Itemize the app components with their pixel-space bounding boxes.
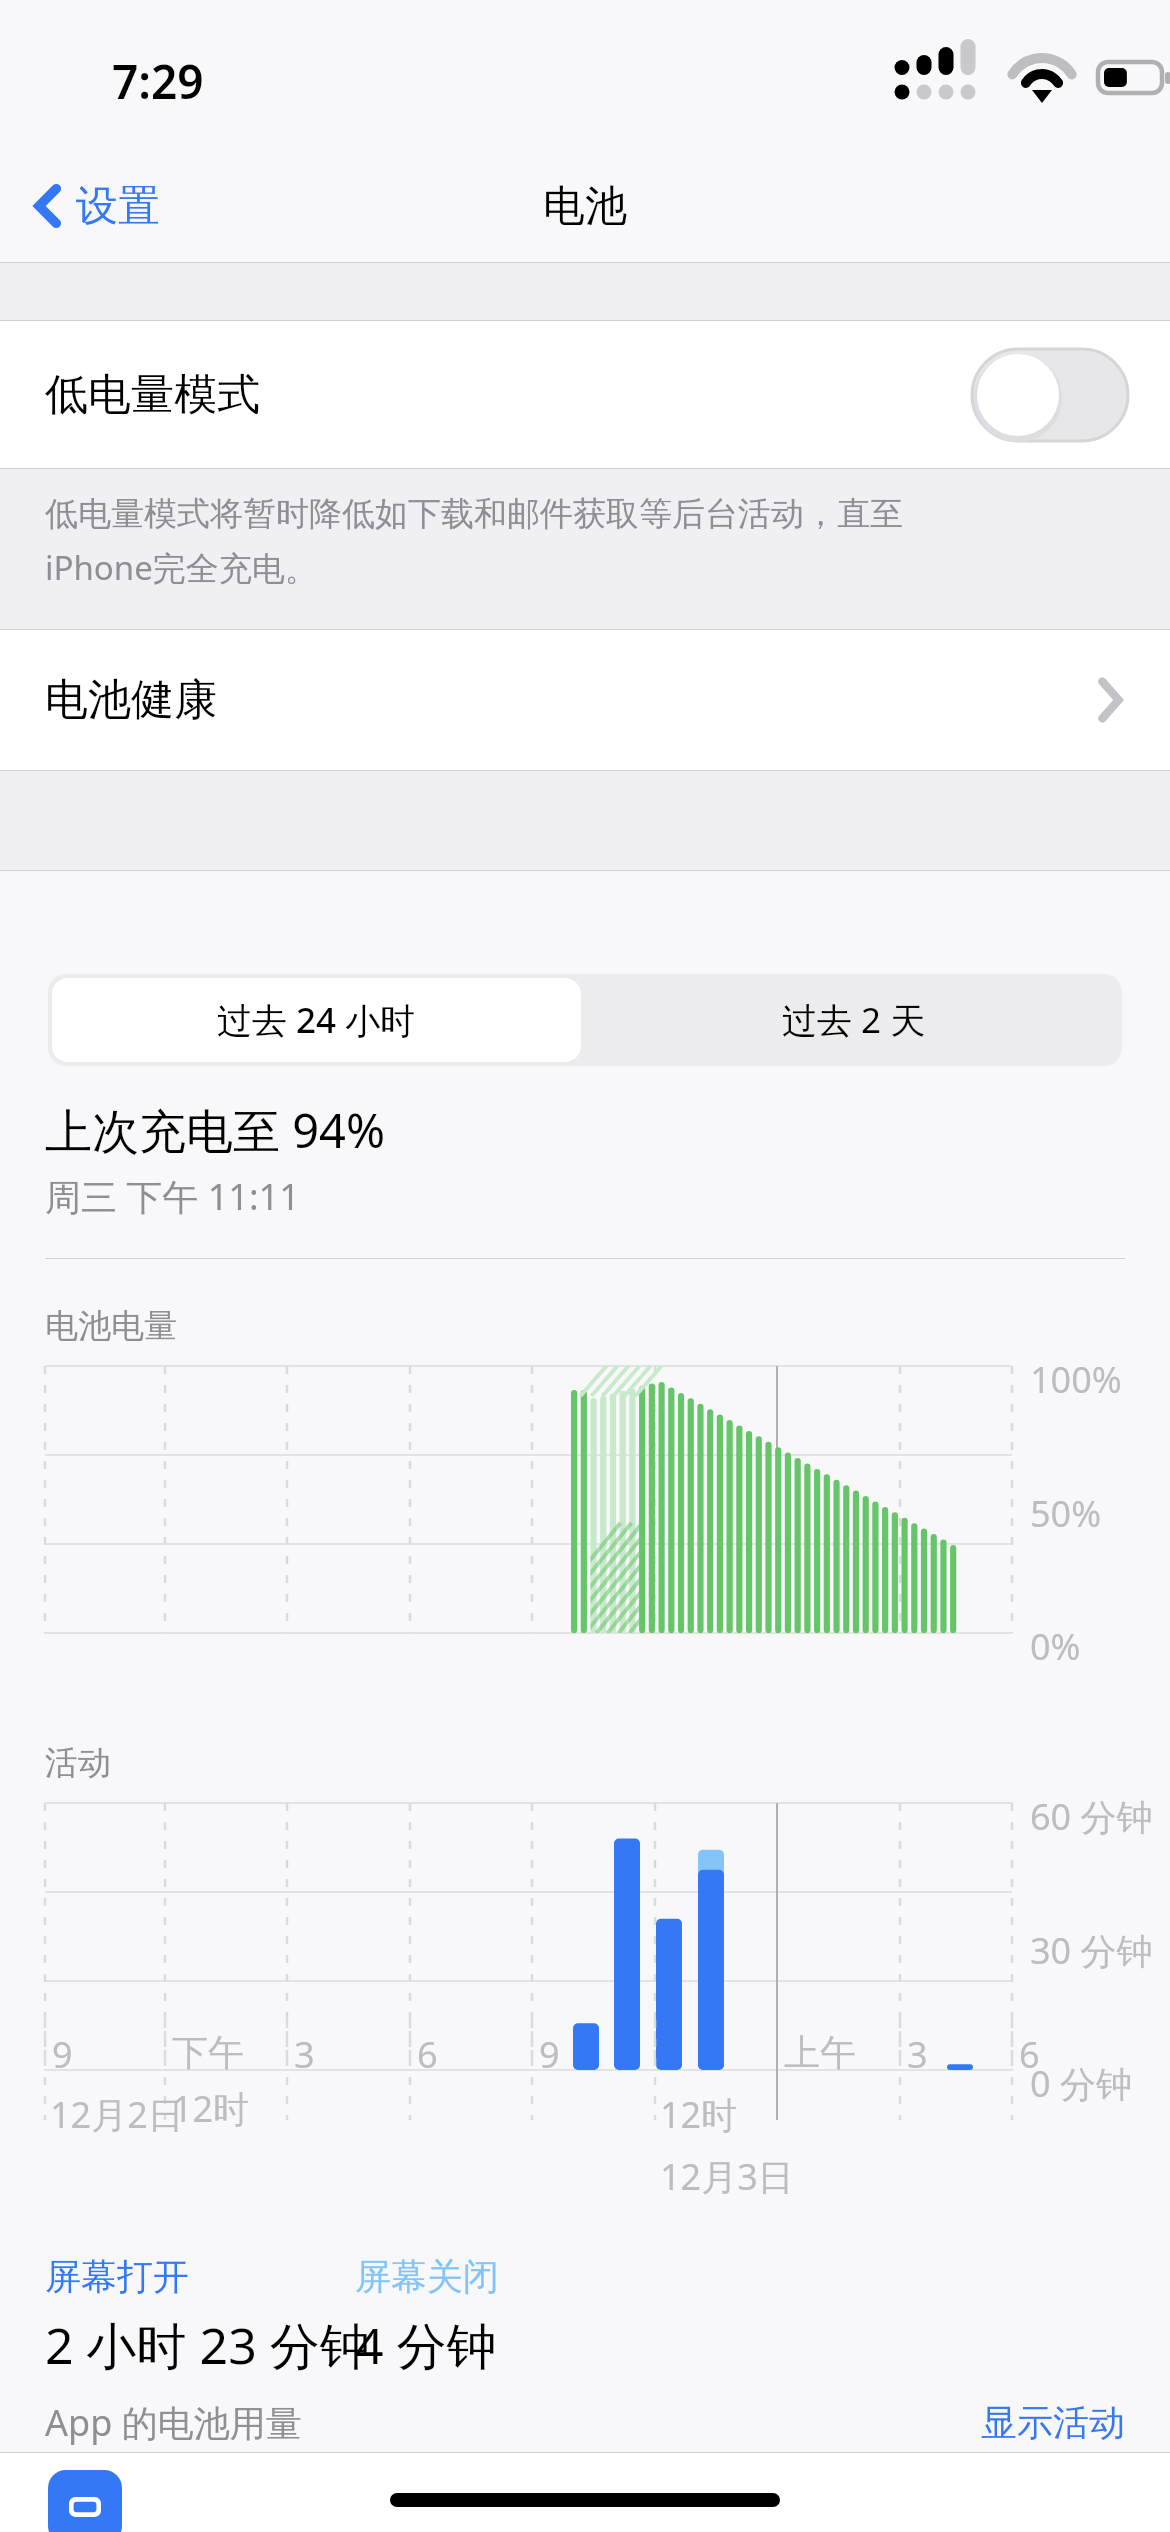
staticText: 屏幕关闭 [355, 2254, 499, 2299]
staticText: 6 [1019, 2030, 1040, 2079]
staticText: 3 [294, 2030, 315, 2079]
button[interactable]: 低电量模式 [972, 349, 1128, 441]
button[interactable]: 电池健康 [0, 630, 1170, 770]
staticText: 30 分钟 [1030, 1926, 1153, 1975]
staticText: 电池 [543, 180, 627, 233]
staticText: 60 分钟 [1030, 1792, 1153, 1841]
staticText: 9 [539, 2030, 560, 2079]
staticText: 低电量模式将暂时降低如下载和邮件获取等后台活动，直至 [45, 493, 903, 535]
button[interactable]: 显示活动 [936, 2392, 1170, 2452]
staticText: 4 分钟 [355, 2311, 497, 2379]
staticText: 活动 [45, 1742, 111, 1784]
staticText: 下午 [172, 2030, 244, 2075]
button[interactable] [48, 2470, 122, 2532]
staticText: 7:29 [112, 50, 204, 113]
staticText: 12月3日 [660, 2152, 794, 2201]
button[interactable]: 设置 [26, 150, 166, 262]
staticText: 周三 下午 11:11 [45, 1172, 300, 1221]
staticText: 12月2日 [50, 2090, 184, 2139]
staticText: iPhone完全充电。 [45, 545, 318, 590]
staticText: 电池健康 [45, 673, 217, 727]
staticText: App 的电池用量 [45, 2398, 302, 2447]
button[interactable]: 过去 2 天 [585, 974, 1122, 1066]
staticText: 过去 2 天 [782, 996, 926, 1044]
staticText: 0 分钟 [1030, 2059, 1132, 2108]
staticText: 6 [417, 2030, 438, 2079]
staticText: 电池电量 [45, 1305, 177, 1347]
staticText: 9 [52, 2030, 73, 2079]
staticText: 上次充电至 94% [45, 1098, 386, 1162]
staticText: 显示活动 [981, 2400, 1125, 2444]
staticText: 12时 [172, 2084, 250, 2133]
staticText: 低电量模式 [45, 368, 260, 422]
staticText: 设置 [76, 180, 160, 233]
staticText: 50% [1030, 1489, 1102, 1538]
staticText: 过去 24 小时 [217, 996, 416, 1044]
staticText: 上午 [784, 2030, 856, 2075]
staticText: 屏幕打开 [45, 2254, 189, 2299]
staticText: 100% [1030, 1355, 1122, 1404]
button[interactable]: 过去 24 小时 [52, 978, 581, 1062]
staticText: 12时 [660, 2090, 738, 2139]
staticText: 3 [907, 2030, 928, 2079]
staticText: 2 小时 23 分钟 [45, 2311, 370, 2379]
button[interactable]: 低电量模式 [0, 321, 1170, 468]
staticText: 0% [1030, 1622, 1081, 1671]
